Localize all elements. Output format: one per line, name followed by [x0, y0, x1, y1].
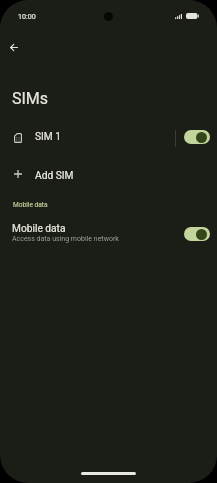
button[interactable]: Add SIM — [0, 162, 217, 189]
staticText: 10:00 — [18, 12, 36, 20]
staticText: Mobile data — [12, 223, 66, 235]
button[interactable]: Toggle switch, on — [184, 227, 210, 241]
button[interactable]: Navigate back — [0, 33, 28, 61]
staticText: SIM 1 — [35, 131, 61, 143]
staticText: Access data using mobile network — [12, 235, 119, 243]
button[interactable]: Mobile data — [0, 216, 217, 246]
button[interactable]: Toggle switch, on — [184, 130, 210, 144]
staticText: Add SIM — [35, 170, 74, 182]
button[interactable]: SIM 1 — [0, 123, 217, 150]
staticText: Mobile data — [13, 201, 48, 209]
staticText: SIMs — [12, 89, 49, 108]
